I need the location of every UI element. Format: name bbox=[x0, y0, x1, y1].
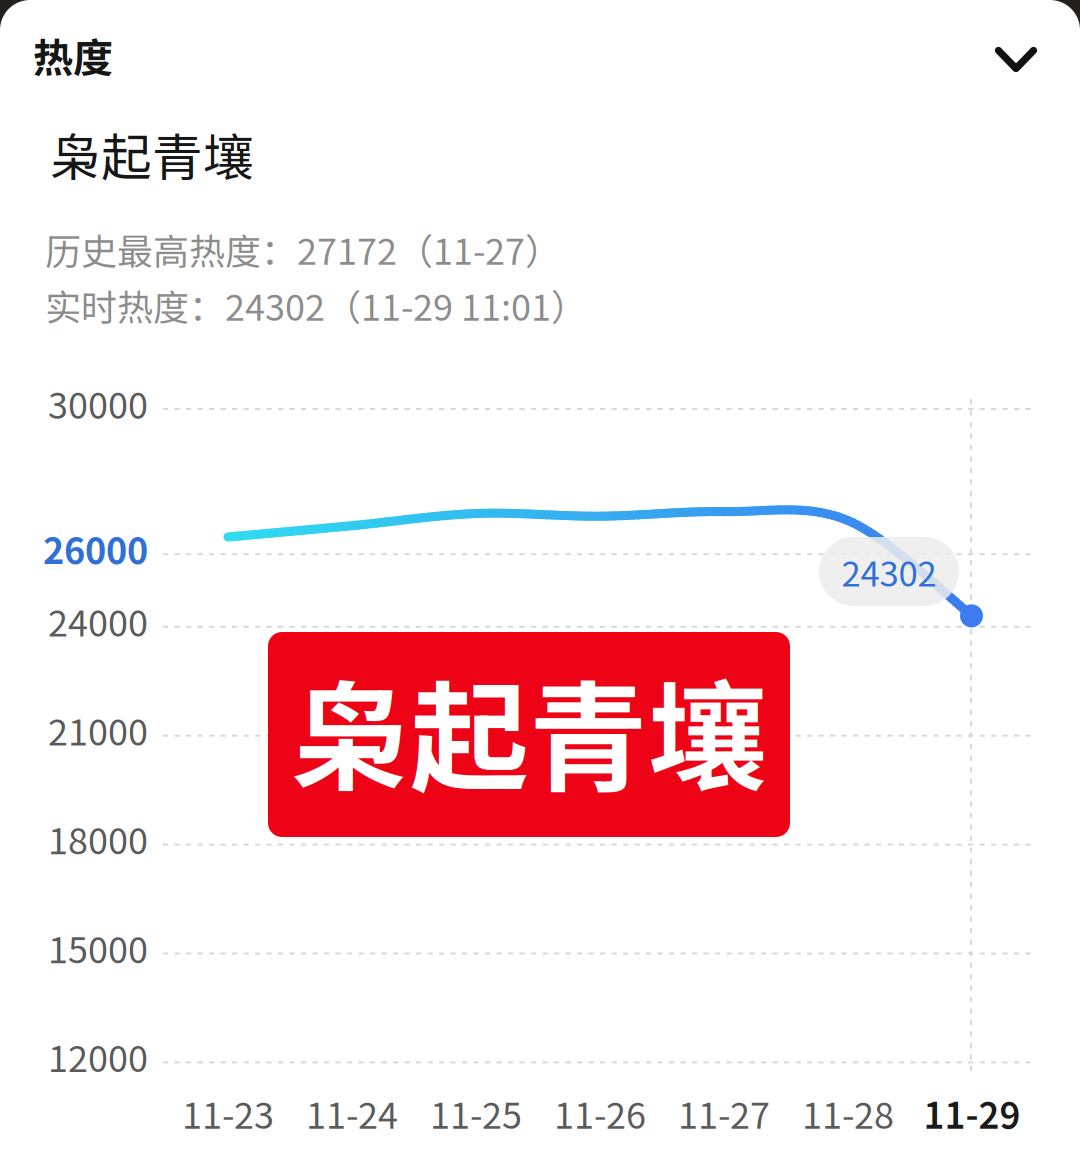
staticText: 11-26 bbox=[554, 1087, 646, 1139]
staticText: 21000 bbox=[48, 704, 148, 756]
staticText: 11-24 bbox=[306, 1087, 398, 1139]
staticText: 24302 bbox=[841, 546, 936, 597]
staticText: 11-28 bbox=[802, 1087, 894, 1139]
button[interactable]: 热度 bbox=[33, 17, 313, 93]
staticText: 11-29 bbox=[923, 1087, 1020, 1139]
staticText: 热度 bbox=[33, 26, 113, 84]
button[interactable]: Collapse bbox=[980, 22, 1052, 98]
staticText: 实时热度：24302（11-29 11:01） bbox=[45, 279, 587, 331]
staticText: 11-23 bbox=[182, 1087, 274, 1139]
staticText: 12000 bbox=[48, 1030, 148, 1082]
staticText: 枭起青壤 bbox=[50, 117, 254, 191]
staticText: 24000 bbox=[48, 595, 148, 647]
staticText: 15000 bbox=[48, 921, 148, 973]
staticText: 11-25 bbox=[430, 1087, 522, 1139]
staticText: 枭起青壤 bbox=[291, 644, 767, 815]
staticText: 18000 bbox=[48, 812, 148, 865]
staticText: 11-27 bbox=[678, 1087, 770, 1139]
staticText: 26000 bbox=[43, 522, 148, 574]
staticText: 30000 bbox=[48, 377, 148, 429]
staticText: 历史最高热度：27172（11-27） bbox=[45, 223, 561, 275]
